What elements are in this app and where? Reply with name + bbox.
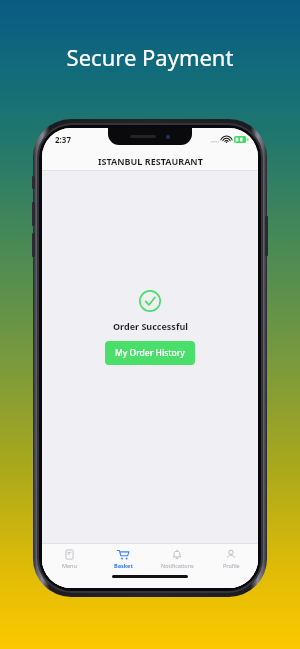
- staticText: Order Successful: [113, 320, 188, 332]
- staticText: Menu: [62, 562, 77, 569]
- staticText: 2:37: [55, 134, 71, 145]
- button[interactable]: Notifications: [150, 544, 204, 574]
- button[interactable]: Basket: [96, 544, 150, 574]
- staticText: Profile: [223, 562, 240, 569]
- staticText: Notifications: [161, 562, 194, 569]
- button[interactable]: Profile: [204, 544, 258, 574]
- button[interactable]: My Order History: [105, 341, 195, 365]
- staticText: Basket: [114, 562, 133, 569]
- staticText: ISTANBUL RESTAURANT: [98, 155, 203, 167]
- staticText: My Order History: [115, 347, 185, 359]
- button[interactable]: Menu: [42, 544, 96, 574]
- staticText: Secure Payment: [0, 42, 300, 72]
